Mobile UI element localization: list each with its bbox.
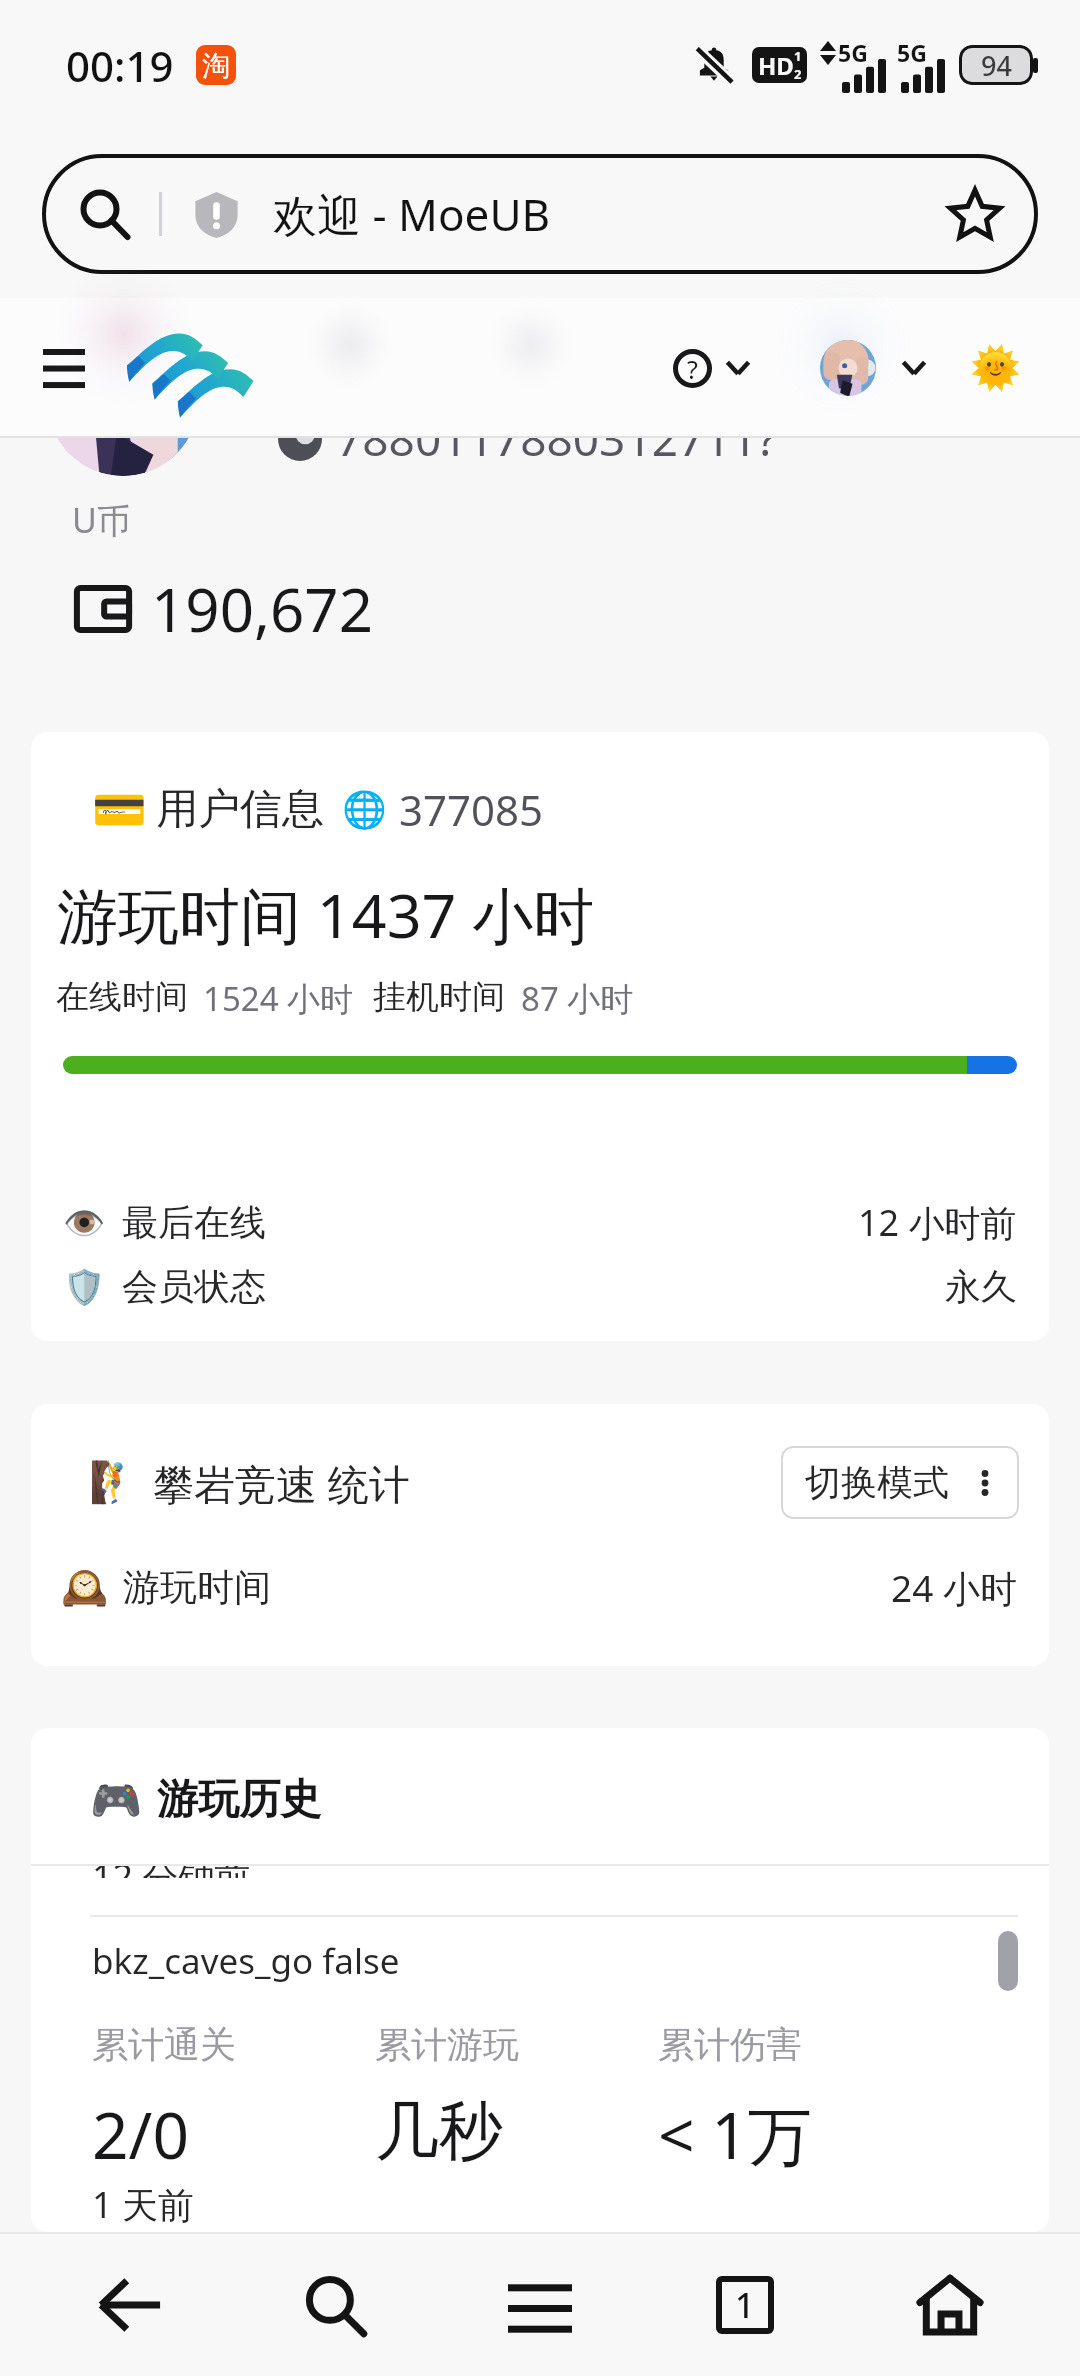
staticText: 1 — [735, 2282, 755, 2328]
button[interactable]: Menu — [43, 347, 85, 389]
staticText: 94 — [981, 47, 1012, 84]
button[interactable]: Tabs — [670, 2234, 820, 2376]
staticText: 累计通关 — [92, 2022, 236, 2067]
staticText: 1 — [794, 47, 802, 65]
staticText: 7880117880312711? — [336, 407, 777, 470]
button[interactable]: Menu — [465, 2234, 615, 2376]
staticText: 🎮 — [90, 1776, 143, 1825]
staticText: 5G — [838, 37, 868, 68]
staticText: 🌞 — [970, 344, 1022, 392]
staticText: 游玩历史 — [157, 1774, 321, 1826]
button[interactable]: Search — [260, 2234, 410, 2376]
staticText: 用户信息 — [156, 783, 324, 836]
staticText: 1524 小时 — [203, 976, 354, 1021]
staticText: 87 小时 — [521, 976, 634, 1021]
staticText: 累计伤害 — [658, 2022, 802, 2067]
staticText: 累计游玩 — [375, 2022, 519, 2067]
staticText: 攀岩竞速 统计 — [153, 1455, 410, 1511]
staticText: 切换模式 — [805, 1460, 949, 1505]
staticText: bkz_caves_go false — [92, 1937, 400, 1985]
staticText: 最后在线 — [122, 1200, 266, 1245]
staticText: < 1万 — [658, 2091, 812, 2178]
staticText: 2 — [794, 65, 802, 83]
staticText: 游玩时间 — [123, 1564, 271, 1611]
staticText: 挂机时间 — [373, 976, 505, 1018]
staticText: 🛡 — [63, 1267, 106, 1307]
other: Bookmark — [950, 187, 1000, 241]
staticText: U币 — [72, 497, 131, 543]
staticText: HD — [758, 49, 794, 82]
staticText: 5G — [897, 37, 927, 68]
staticText: ? — [687, 352, 698, 386]
staticText: 24 小时 — [891, 1562, 1017, 1613]
staticText: 几秒 — [375, 2091, 503, 2172]
staticText: 永久 — [945, 1264, 1017, 1309]
staticText: 在线时间 — [56, 976, 188, 1018]
staticText: 12 分钟前 — [92, 1866, 251, 1878]
button[interactable]: Home — [875, 2234, 1025, 2376]
staticText: 00:19 — [66, 37, 174, 94]
button[interactable]: Search — [42, 154, 1038, 274]
staticText: 🕰 — [61, 1565, 109, 1610]
staticText: 💳 — [92, 784, 147, 836]
staticText: 377085 — [399, 781, 544, 838]
staticText: 淘 — [202, 48, 230, 83]
staticText: 1 天前 — [92, 2180, 194, 2229]
other: Search — [80, 189, 130, 239]
staticText: 👁 — [63, 1203, 106, 1243]
staticText: 2/0 — [92, 2091, 190, 2178]
staticText: 会员状态 — [122, 1264, 266, 1309]
staticText: 🌐 — [342, 789, 387, 831]
staticText: 欢迎 - MoeUB — [273, 184, 551, 244]
staticText: 12 小时前 — [858, 1198, 1017, 1247]
button[interactable]: 切换模式 — [781, 1446, 1019, 1519]
staticText: 游玩时间 1437 小时 — [57, 873, 595, 956]
staticText: 🧗 — [89, 1459, 139, 1506]
staticText: 190,672 — [151, 568, 373, 650]
button[interactable]: Back — [55, 2234, 205, 2376]
button[interactable]: Help — [673, 349, 712, 388]
